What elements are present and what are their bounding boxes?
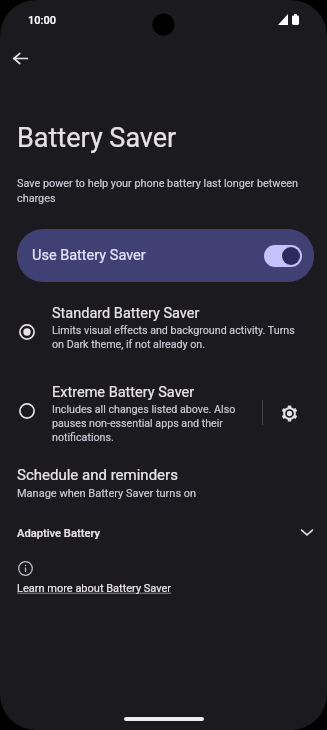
- staticText: Manage when Battery Saver turns on: [17, 487, 197, 500]
- staticText: Standard Battery Saver: [52, 305, 200, 322]
- staticText: Use Battery Saver: [32, 247, 146, 264]
- staticText: Limits visual effects and background act…: [52, 324, 304, 351]
- button[interactable]: Learn more about Battery Saver: [17, 582, 172, 595]
- staticText: Includes all changes listed above. Also …: [52, 403, 246, 444]
- staticText: Battery Saver: [17, 122, 177, 154]
- button[interactable]: Use Battery Saver: [17, 229, 314, 282]
- button[interactable]: Extreme Battery Saver settings: [267, 391, 312, 436]
- staticText: 10:00: [28, 14, 56, 27]
- button[interactable]: Back: [3, 41, 38, 76]
- staticText: Adaptive Battery: [17, 527, 100, 540]
- staticText: Save power to help your phone battery la…: [17, 177, 309, 205]
- button[interactable]: Standard Battery Saver: [0, 302, 327, 348]
- staticText: Extreme Battery Saver: [52, 384, 195, 401]
- button[interactable]: Use Battery Saver toggle: [264, 245, 302, 267]
- staticText: Schedule and reminders: [17, 466, 178, 484]
- button[interactable]: Adaptive Battery: [0, 516, 327, 548]
- button[interactable]: Extreme Battery Saver: [0, 381, 327, 441]
